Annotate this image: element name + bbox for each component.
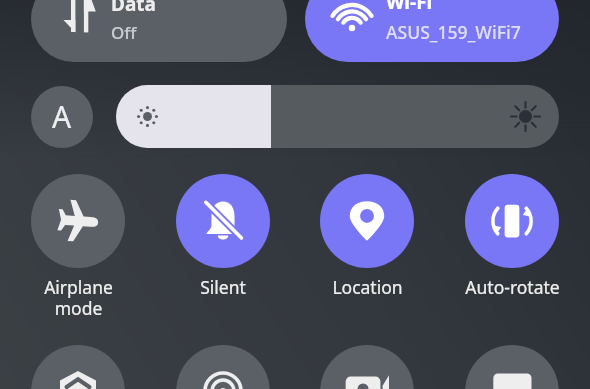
- button[interactable]: Airplane mode: [31, 174, 125, 268]
- button[interactable]: Home: [31, 345, 125, 389]
- button[interactable]: Screen record: [320, 345, 414, 389]
- button[interactable]: Auto-rotate: [465, 174, 559, 268]
- button[interactable]: Location: [320, 174, 414, 268]
- button[interactable]: Auto brightness: [31, 86, 93, 148]
- button[interactable]: Wi-Fi: [305, 0, 559, 62]
- staticText: Airplane mode: [44, 275, 113, 320]
- staticText: Off: [111, 21, 137, 44]
- button[interactable]: Nearby share: [176, 345, 270, 389]
- staticText: Data: [111, 0, 156, 17]
- button[interactable]: Silent: [176, 174, 270, 268]
- button[interactable]: Data: [31, 0, 287, 62]
- staticText: Location: [332, 275, 403, 299]
- staticText: Wi-Fi: [386, 0, 433, 15]
- staticText: Silent: [200, 275, 246, 299]
- button[interactable]: Screenshot: [465, 345, 559, 389]
- staticText: Auto-rotate: [465, 275, 560, 299]
- button[interactable]: Brightness: [116, 85, 559, 148]
- staticText: A: [52, 96, 72, 137]
- staticText: ASUS_159_WiFi7: [386, 20, 521, 44]
